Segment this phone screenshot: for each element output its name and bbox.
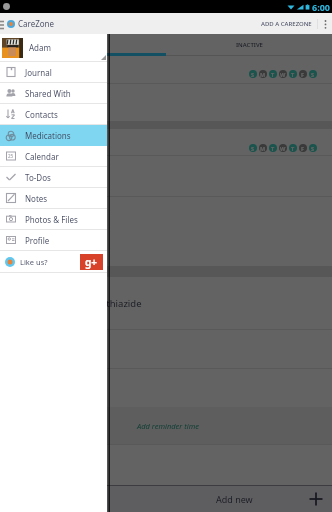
button[interactable] [0, 156, 332, 196]
staticText: Add reminder time [137, 421, 200, 431]
staticText: T [291, 71, 295, 78]
staticText: W [280, 71, 286, 78]
staticText: Contacts [25, 109, 58, 120]
staticText: 25 [8, 153, 14, 159]
button[interactable]: Google Plus [80, 254, 103, 270]
button[interactable]: Open navigation drawer [0, 13, 4, 34]
button[interactable]: More options [318, 13, 332, 34]
button[interactable]: Add reminder time [0, 407, 332, 444]
button[interactable]: To-Dos [0, 167, 107, 187]
button[interactable] [0, 197, 332, 266]
staticText: Calendar [25, 151, 59, 162]
staticText: Hydrochlorothiazide [51, 297, 142, 310]
button[interactable]: ADD A CAREZONE [258, 16, 315, 32]
staticText: S [311, 71, 315, 78]
button[interactable]: Shared With [0, 83, 107, 103]
button[interactable]: ADD A CAREZONE [258, 16, 315, 32]
button[interactable]: 25 [0, 146, 107, 166]
staticText: 6:00 [312, 1, 330, 13]
button[interactable]: Profile [0, 230, 107, 250]
staticText: Photos & Files [25, 214, 78, 225]
button[interactable] [0, 330, 332, 368]
staticText: Journal [25, 67, 52, 78]
button[interactable]: S [0, 129, 332, 155]
button[interactable]: S [0, 56, 332, 83]
button[interactable]: More options [318, 13, 332, 34]
staticText: F [301, 71, 305, 78]
staticText: S [311, 145, 315, 152]
button[interactable]: Adam [0, 34, 107, 61]
staticText: T [271, 145, 275, 152]
staticText: Adam [29, 42, 51, 53]
button[interactable]: Medications [0, 125, 107, 146]
button[interactable]: Open navigation drawer [0, 13, 4, 34]
staticText: g+ [85, 255, 98, 269]
staticText: Notes [25, 193, 48, 204]
button[interactable]: Add new [137, 486, 332, 512]
button[interactable]: Like us? [0, 251, 107, 272]
staticText: Medications [25, 130, 71, 141]
button[interactable]: Photos & Files [0, 209, 107, 229]
button[interactable]: Journal [0, 62, 107, 82]
staticText: M [260, 71, 266, 78]
staticText: T [271, 71, 275, 78]
staticText: CareZone [18, 18, 55, 29]
staticText: ADD A CAREZONE [261, 20, 312, 28]
button[interactable]: Add [308, 491, 324, 507]
staticText: Add new [216, 493, 253, 505]
staticText: CareZone [18, 18, 55, 29]
staticText: W [280, 145, 286, 152]
button[interactable]: Hydrochlorothiazide [0, 277, 332, 329]
staticText: INACTIVE [236, 41, 263, 49]
staticText: ADD A CAREZONE [261, 20, 312, 28]
staticText: Like us? [20, 257, 48, 267]
staticText: S [251, 145, 255, 152]
staticText: F [301, 145, 305, 152]
button[interactable]: Contacts [0, 104, 107, 124]
button[interactable]: ACTIVE [0, 34, 166, 56]
button[interactable] [0, 369, 332, 407]
staticText: T [291, 145, 295, 152]
staticText: S [251, 71, 255, 78]
staticText: Shared With [25, 88, 71, 99]
button[interactable] [0, 84, 332, 121]
staticText: Profile [25, 235, 50, 246]
staticText: M [260, 145, 266, 152]
button[interactable]: Notes [0, 188, 107, 208]
button[interactable]: INACTIVE [166, 34, 332, 56]
staticText: To-Dos [25, 172, 51, 183]
